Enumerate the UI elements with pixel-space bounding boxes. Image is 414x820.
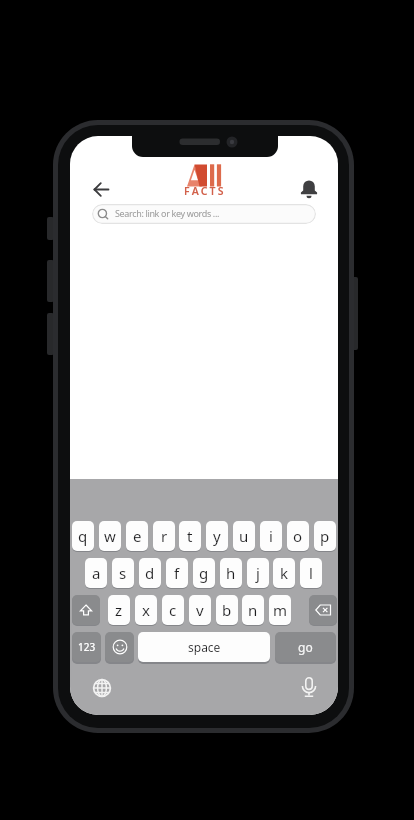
button[interactable]: z: [108, 595, 130, 625]
button[interactable]: c: [162, 595, 184, 625]
staticText: go: [298, 639, 313, 655]
button[interactable]: i: [260, 521, 282, 551]
staticText: a: [92, 563, 101, 583]
button[interactable]: b: [216, 595, 238, 625]
button[interactable]: h: [220, 558, 242, 588]
button[interactable]: 123: [72, 632, 101, 662]
staticText: space: [188, 639, 221, 655]
staticText: 123: [78, 640, 96, 654]
button[interactable]: a: [85, 558, 107, 588]
staticText: f: [174, 563, 180, 583]
button[interactable]: y: [206, 521, 228, 551]
button[interactable]: [299, 178, 319, 198]
staticText: c: [169, 600, 177, 620]
button[interactable]: r: [153, 521, 175, 551]
button[interactable]: space: [138, 632, 270, 662]
button[interactable]: [91, 179, 112, 200]
staticText: u: [239, 526, 249, 546]
staticText: Search: link or key words ...: [115, 207, 220, 219]
staticText: m: [273, 600, 288, 620]
button[interactable]: g: [193, 558, 215, 588]
staticText: i: [269, 526, 273, 546]
staticText: k: [280, 563, 289, 583]
staticText: w: [104, 526, 116, 546]
button[interactable]: [92, 678, 112, 698]
staticText: o: [293, 526, 303, 546]
button[interactable]: [300, 677, 318, 699]
button[interactable]: j: [247, 558, 269, 588]
button[interactable]: l: [300, 558, 322, 588]
button[interactable]: n: [242, 595, 264, 625]
staticText: FACTS: [184, 184, 226, 198]
button[interactable]: s: [112, 558, 134, 588]
button[interactable]: go: [275, 632, 336, 662]
staticText: e: [133, 526, 142, 546]
button[interactable]: [309, 595, 337, 625]
button[interactable]: d: [139, 558, 161, 588]
staticText: y: [213, 526, 221, 546]
staticText: d: [145, 563, 155, 583]
button[interactable]: e: [126, 521, 148, 551]
staticText: r: [161, 526, 168, 546]
staticText: t: [187, 526, 193, 546]
staticText: s: [119, 563, 127, 583]
button[interactable]: v: [189, 595, 211, 625]
staticText: j: [256, 563, 260, 583]
button[interactable]: m: [269, 595, 291, 625]
button[interactable]: o: [287, 521, 309, 551]
button[interactable]: x: [135, 595, 157, 625]
button[interactable]: [105, 632, 134, 662]
button[interactable]: u: [233, 521, 255, 551]
staticText: n: [248, 600, 258, 620]
button[interactable]: f: [166, 558, 188, 588]
staticText: x: [142, 600, 150, 620]
button[interactable]: Search: link or key words ...: [92, 204, 316, 224]
button[interactable]: t: [179, 521, 201, 551]
staticText: b: [222, 600, 232, 620]
staticText: g: [199, 563, 209, 583]
button[interactable]: k: [273, 558, 295, 588]
button[interactable]: w: [99, 521, 121, 551]
staticText: h: [226, 563, 236, 583]
button[interactable]: p: [314, 521, 336, 551]
staticText: z: [115, 600, 123, 620]
staticText: l: [309, 563, 313, 583]
staticText: q: [78, 526, 88, 546]
staticText: v: [196, 600, 204, 620]
staticText: p: [320, 526, 330, 546]
button[interactable]: [72, 595, 100, 625]
button[interactable]: q: [72, 521, 94, 551]
